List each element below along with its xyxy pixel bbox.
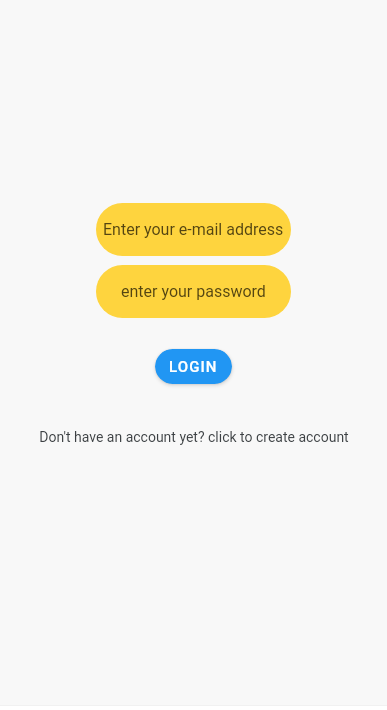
- staticText: LOGIN: [169, 358, 218, 376]
- button[interactable]: Enter your e-mail address: [96, 203, 291, 256]
- staticText: Enter your e-mail address: [103, 220, 284, 239]
- button[interactable]: LOGIN: [155, 349, 232, 384]
- staticText: Don't have an account yet? click to crea…: [39, 429, 349, 445]
- button[interactable]: Don't have an account yet? click to crea…: [0, 429, 387, 445]
- button[interactable]: enter your password: [96, 265, 291, 318]
- staticText: enter your password: [121, 282, 266, 301]
